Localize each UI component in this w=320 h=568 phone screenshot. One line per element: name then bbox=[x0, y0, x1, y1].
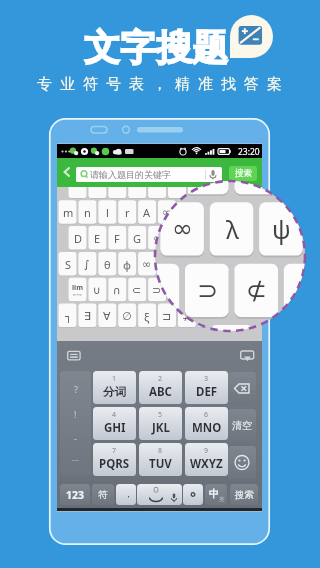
button[interactable]: ψ bbox=[259, 202, 303, 255]
button[interactable]: A bbox=[138, 200, 156, 224]
staticText: ⊄ bbox=[246, 276, 267, 305]
button[interactable]: F bbox=[108, 226, 126, 250]
button[interactable]: ⊇ bbox=[168, 278, 186, 302]
button[interactable]: r bbox=[118, 200, 136, 224]
staticText: ≡ bbox=[202, 258, 212, 271]
staticText: 搜索 bbox=[235, 168, 252, 179]
button[interactable] bbox=[183, 484, 203, 505]
button[interactable]: Emoji bbox=[228, 446, 256, 479]
staticText: TUV bbox=[149, 456, 172, 472]
button[interactable]: 清空 bbox=[228, 409, 256, 442]
button[interactable]: φ bbox=[118, 252, 136, 276]
staticText: 3 bbox=[204, 374, 209, 384]
button[interactable]: ⊄ bbox=[234, 264, 278, 317]
staticText: ， bbox=[124, 488, 133, 499]
staticText: ∫ bbox=[84, 258, 90, 271]
button[interactable]: Backspace bbox=[228, 372, 256, 405]
button[interactable]: Hide keyboard bbox=[240, 350, 255, 362]
button[interactable]: lim bbox=[69, 278, 87, 302]
button[interactable]: ∨ bbox=[228, 278, 246, 302]
button[interactable]: 8 bbox=[139, 443, 182, 476]
button[interactable]: ∉ bbox=[188, 226, 206, 250]
button[interactable]: m bbox=[59, 200, 77, 224]
button[interactable]: 6 bbox=[185, 407, 228, 440]
button[interactable]: D bbox=[69, 226, 87, 250]
button[interactable]: ∴ bbox=[238, 252, 256, 276]
staticText: D bbox=[74, 231, 83, 246]
button[interactable]: ⊃ bbox=[148, 278, 166, 302]
button[interactable]: ⊐ bbox=[158, 304, 176, 328]
button[interactable]: ⊄ bbox=[178, 252, 196, 276]
button[interactable]: ℓ bbox=[208, 226, 226, 250]
button[interactable]: ∡ bbox=[238, 304, 256, 328]
button[interactable]: ∩ bbox=[108, 278, 126, 302]
button[interactable]: ≡ bbox=[198, 252, 216, 276]
staticText: 搜索 bbox=[235, 489, 254, 501]
staticText: ∀ bbox=[103, 310, 111, 323]
button[interactable]: Keyboard bbox=[67, 350, 81, 362]
button[interactable]: θ bbox=[98, 252, 116, 276]
button[interactable]: 7 bbox=[93, 443, 136, 476]
button[interactable]: 搜索 bbox=[230, 484, 258, 505]
button[interactable]: ⊃ bbox=[158, 252, 176, 276]
button[interactable]: l bbox=[98, 200, 116, 224]
staticText: 5 bbox=[158, 410, 163, 420]
button[interactable]: ξ bbox=[138, 304, 156, 328]
button[interactable]: Back bbox=[58, 161, 76, 183]
staticText: ⊐ bbox=[162, 310, 172, 323]
button[interactable]: ? bbox=[60, 371, 91, 476]
staticText: 中 bbox=[209, 487, 219, 500]
button[interactable]: ∧ bbox=[208, 278, 226, 302]
staticText: ∴ bbox=[244, 258, 251, 271]
button[interactable]: λ bbox=[210, 202, 254, 255]
button[interactable]: 123 bbox=[60, 484, 90, 505]
staticText: ┐ bbox=[65, 310, 72, 323]
button[interactable]: ∃ bbox=[78, 304, 96, 328]
button[interactable]: 请输入题目的关键字 bbox=[76, 167, 222, 182]
button[interactable]: ∈ bbox=[168, 226, 186, 250]
button[interactable]: 搜索 bbox=[229, 166, 257, 181]
button[interactable]: μ bbox=[228, 226, 246, 250]
staticText: ℘ bbox=[202, 309, 212, 324]
button[interactable]: Space bbox=[137, 484, 182, 505]
button[interactable]: ∂ bbox=[218, 200, 236, 224]
button[interactable]: 1 bbox=[93, 371, 136, 404]
button[interactable]: ， bbox=[116, 484, 136, 505]
button[interactable]: 中 bbox=[205, 484, 227, 505]
button[interactable]: 3 bbox=[185, 371, 228, 404]
staticText: ≈ bbox=[222, 258, 232, 271]
button[interactable]: ⊆ bbox=[188, 278, 206, 302]
button[interactable]: 5 bbox=[139, 407, 182, 440]
button[interactable]: n bbox=[78, 200, 96, 224]
button[interactable]: G bbox=[128, 226, 146, 250]
button[interactable]: ∫ bbox=[78, 252, 96, 276]
button[interactable]: ψ bbox=[198, 200, 216, 224]
button[interactable]: ∝ bbox=[148, 226, 166, 250]
staticText: 9 bbox=[204, 446, 209, 456]
button[interactable]: ┐ bbox=[59, 304, 77, 328]
button[interactable]: ℘ bbox=[198, 304, 216, 328]
button[interactable]: ∅ bbox=[118, 304, 136, 328]
button[interactable]: ∞ bbox=[158, 200, 176, 224]
button[interactable]: ⊃ bbox=[185, 264, 229, 317]
button[interactable]: 4 bbox=[93, 407, 136, 440]
staticText: ⊃ bbox=[162, 258, 172, 271]
button[interactable]: λ bbox=[178, 200, 196, 224]
button[interactable]: ≈ bbox=[218, 252, 236, 276]
button[interactable]: ∠ bbox=[218, 304, 236, 328]
button[interactable]: ∀ bbox=[98, 304, 116, 328]
staticText: l bbox=[106, 205, 109, 220]
button[interactable]: ∇ bbox=[238, 200, 256, 224]
button[interactable]: ∞ bbox=[138, 252, 156, 276]
staticText: ····· bbox=[72, 457, 79, 464]
button[interactable]: ∪ bbox=[88, 278, 106, 302]
button[interactable]: 2 bbox=[139, 371, 182, 404]
button[interactable]: S bbox=[59, 252, 77, 276]
button[interactable]: 9 bbox=[185, 443, 228, 476]
button[interactable]: E bbox=[88, 226, 106, 250]
button[interactable]: 符 bbox=[92, 484, 114, 505]
staticText: F bbox=[114, 231, 120, 246]
button[interactable]: ∞ bbox=[160, 202, 204, 255]
button[interactable]: ⊂ bbox=[128, 278, 146, 302]
button[interactable]: ⊅ bbox=[178, 304, 196, 328]
